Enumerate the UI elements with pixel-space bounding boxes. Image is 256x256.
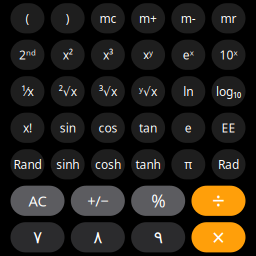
button[interactable]: ¹⁄x xyxy=(10,76,44,106)
button[interactable]: m+ xyxy=(131,3,165,33)
button[interactable]: sin xyxy=(51,113,85,143)
staticText: 2ⁿᵈ xyxy=(19,47,36,63)
staticText: xʸ xyxy=(143,47,153,63)
staticText: ( xyxy=(25,10,29,26)
button[interactable]: ( xyxy=(10,3,44,33)
button[interactable]: ʸ√x xyxy=(131,76,165,106)
staticText: m+ xyxy=(139,10,157,26)
button[interactable]: x³ xyxy=(91,40,125,70)
staticText: ²√x xyxy=(59,83,77,99)
button[interactable]: × xyxy=(191,222,245,252)
staticText: ÷ xyxy=(212,185,225,216)
button[interactable]: EE xyxy=(212,113,245,143)
staticText: sin xyxy=(60,120,76,136)
staticText: mr xyxy=(220,10,236,26)
button[interactable]: ÷ xyxy=(191,186,245,216)
button[interactable]: tan xyxy=(131,113,165,143)
staticText: tan xyxy=(139,120,157,136)
staticText: Rad xyxy=(218,156,239,172)
button[interactable]: ٧ xyxy=(10,222,64,252)
staticText: % xyxy=(151,189,165,213)
button[interactable]: % xyxy=(131,186,185,216)
button[interactable]: AC xyxy=(10,186,64,216)
button[interactable]: 10ˣ xyxy=(212,40,245,70)
staticText: Rand xyxy=(13,156,41,172)
button[interactable]: ٨ xyxy=(71,222,125,252)
button[interactable]: +/− xyxy=(71,186,125,216)
staticText: x³ xyxy=(103,47,113,63)
staticText: ٨ xyxy=(93,227,102,247)
staticText: ٩ xyxy=(154,227,163,247)
button[interactable]: ln xyxy=(171,76,205,106)
staticText: m- xyxy=(181,10,196,26)
staticText: AC xyxy=(28,191,46,211)
button[interactable]: log₁₀ xyxy=(212,76,245,106)
button[interactable]: tanh xyxy=(131,149,165,179)
staticText: 10ˣ xyxy=(219,47,237,63)
staticText: π xyxy=(184,156,192,172)
staticText: ln xyxy=(183,83,193,99)
button[interactable]: Rand xyxy=(10,149,44,179)
button[interactable]: xʸ xyxy=(131,40,165,70)
button[interactable]: cosh xyxy=(91,149,125,179)
button[interactable]: eˣ xyxy=(171,40,205,70)
staticText: +/− xyxy=(87,191,108,211)
staticText: ¹⁄x xyxy=(21,83,33,99)
button[interactable]: cos xyxy=(91,113,125,143)
staticText: x! xyxy=(23,120,32,136)
button[interactable]: ٩ xyxy=(131,222,185,252)
button[interactable]: x! xyxy=(10,113,44,143)
button[interactable]: e xyxy=(171,113,205,143)
staticText: × xyxy=(212,222,225,253)
button[interactable]: mc xyxy=(91,3,125,33)
button[interactable]: m- xyxy=(171,3,205,33)
button[interactable]: π xyxy=(171,149,205,179)
button[interactable]: ) xyxy=(51,3,85,33)
button[interactable]: ³√x xyxy=(91,76,125,106)
staticText: ) xyxy=(66,10,70,26)
button[interactable]: mr xyxy=(212,3,245,33)
staticText: ٧ xyxy=(33,227,42,247)
button[interactable]: Rad xyxy=(212,149,245,179)
button[interactable]: 2ⁿᵈ xyxy=(10,40,44,70)
staticText: sinh xyxy=(56,156,79,172)
staticText: eˣ xyxy=(183,47,194,63)
staticText: ³√x xyxy=(99,83,117,99)
staticText: EE xyxy=(221,120,235,136)
staticText: e xyxy=(185,120,192,136)
staticText: cos xyxy=(98,120,117,136)
button[interactable]: x² xyxy=(51,40,85,70)
staticText: log₁₀ xyxy=(216,83,241,99)
staticText: x² xyxy=(63,47,73,63)
staticText: ʸ√x xyxy=(139,83,157,99)
button[interactable]: ²√x xyxy=(51,76,85,106)
staticText: tanh xyxy=(136,156,161,172)
button[interactable]: sinh xyxy=(51,149,85,179)
staticText: cosh xyxy=(95,156,121,172)
staticText: mc xyxy=(99,10,116,26)
